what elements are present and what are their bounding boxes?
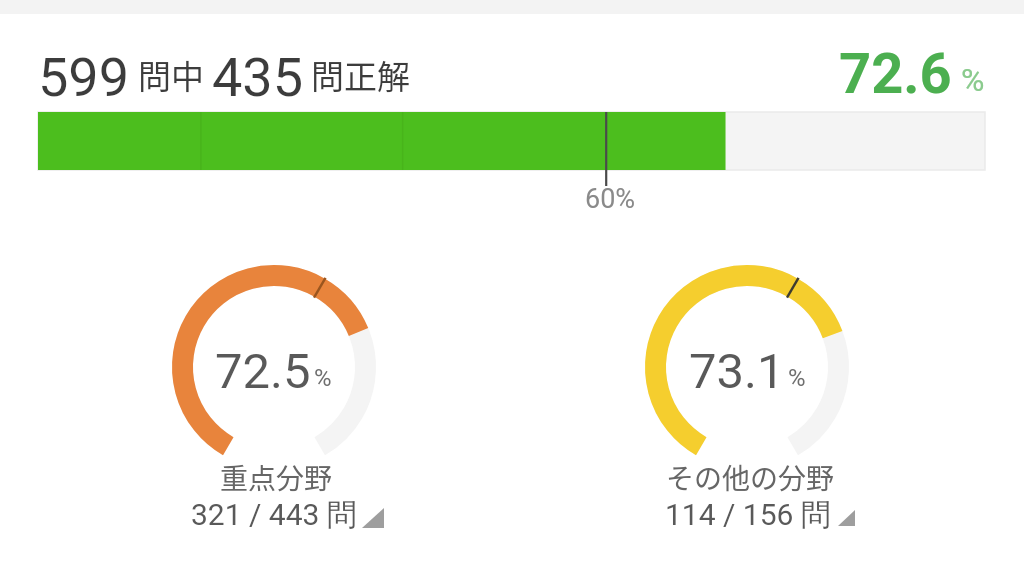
button[interactable] (38, 112, 985, 170)
staticText: 60% (585, 183, 636, 215)
staticText: 問中 (138, 51, 204, 99)
staticText: 321 / 443 問 (191, 496, 357, 534)
staticText: 重点分野 (220, 457, 333, 498)
staticText: 435 (212, 46, 304, 109)
button[interactable] (635, 492, 875, 534)
staticText: 114 / 156 問 (665, 496, 831, 534)
staticText: その他の分野 (666, 457, 835, 498)
staticText: % (961, 61, 985, 99)
staticText: 72.5 (215, 343, 311, 400)
staticText: % (314, 364, 332, 392)
staticText: 72.6 (839, 41, 952, 107)
staticText: 599 (38, 46, 130, 109)
button[interactable] (160, 492, 400, 534)
staticText: 問正解 (311, 51, 410, 99)
staticText: 73.1 (689, 343, 785, 400)
staticText: % (788, 364, 806, 392)
